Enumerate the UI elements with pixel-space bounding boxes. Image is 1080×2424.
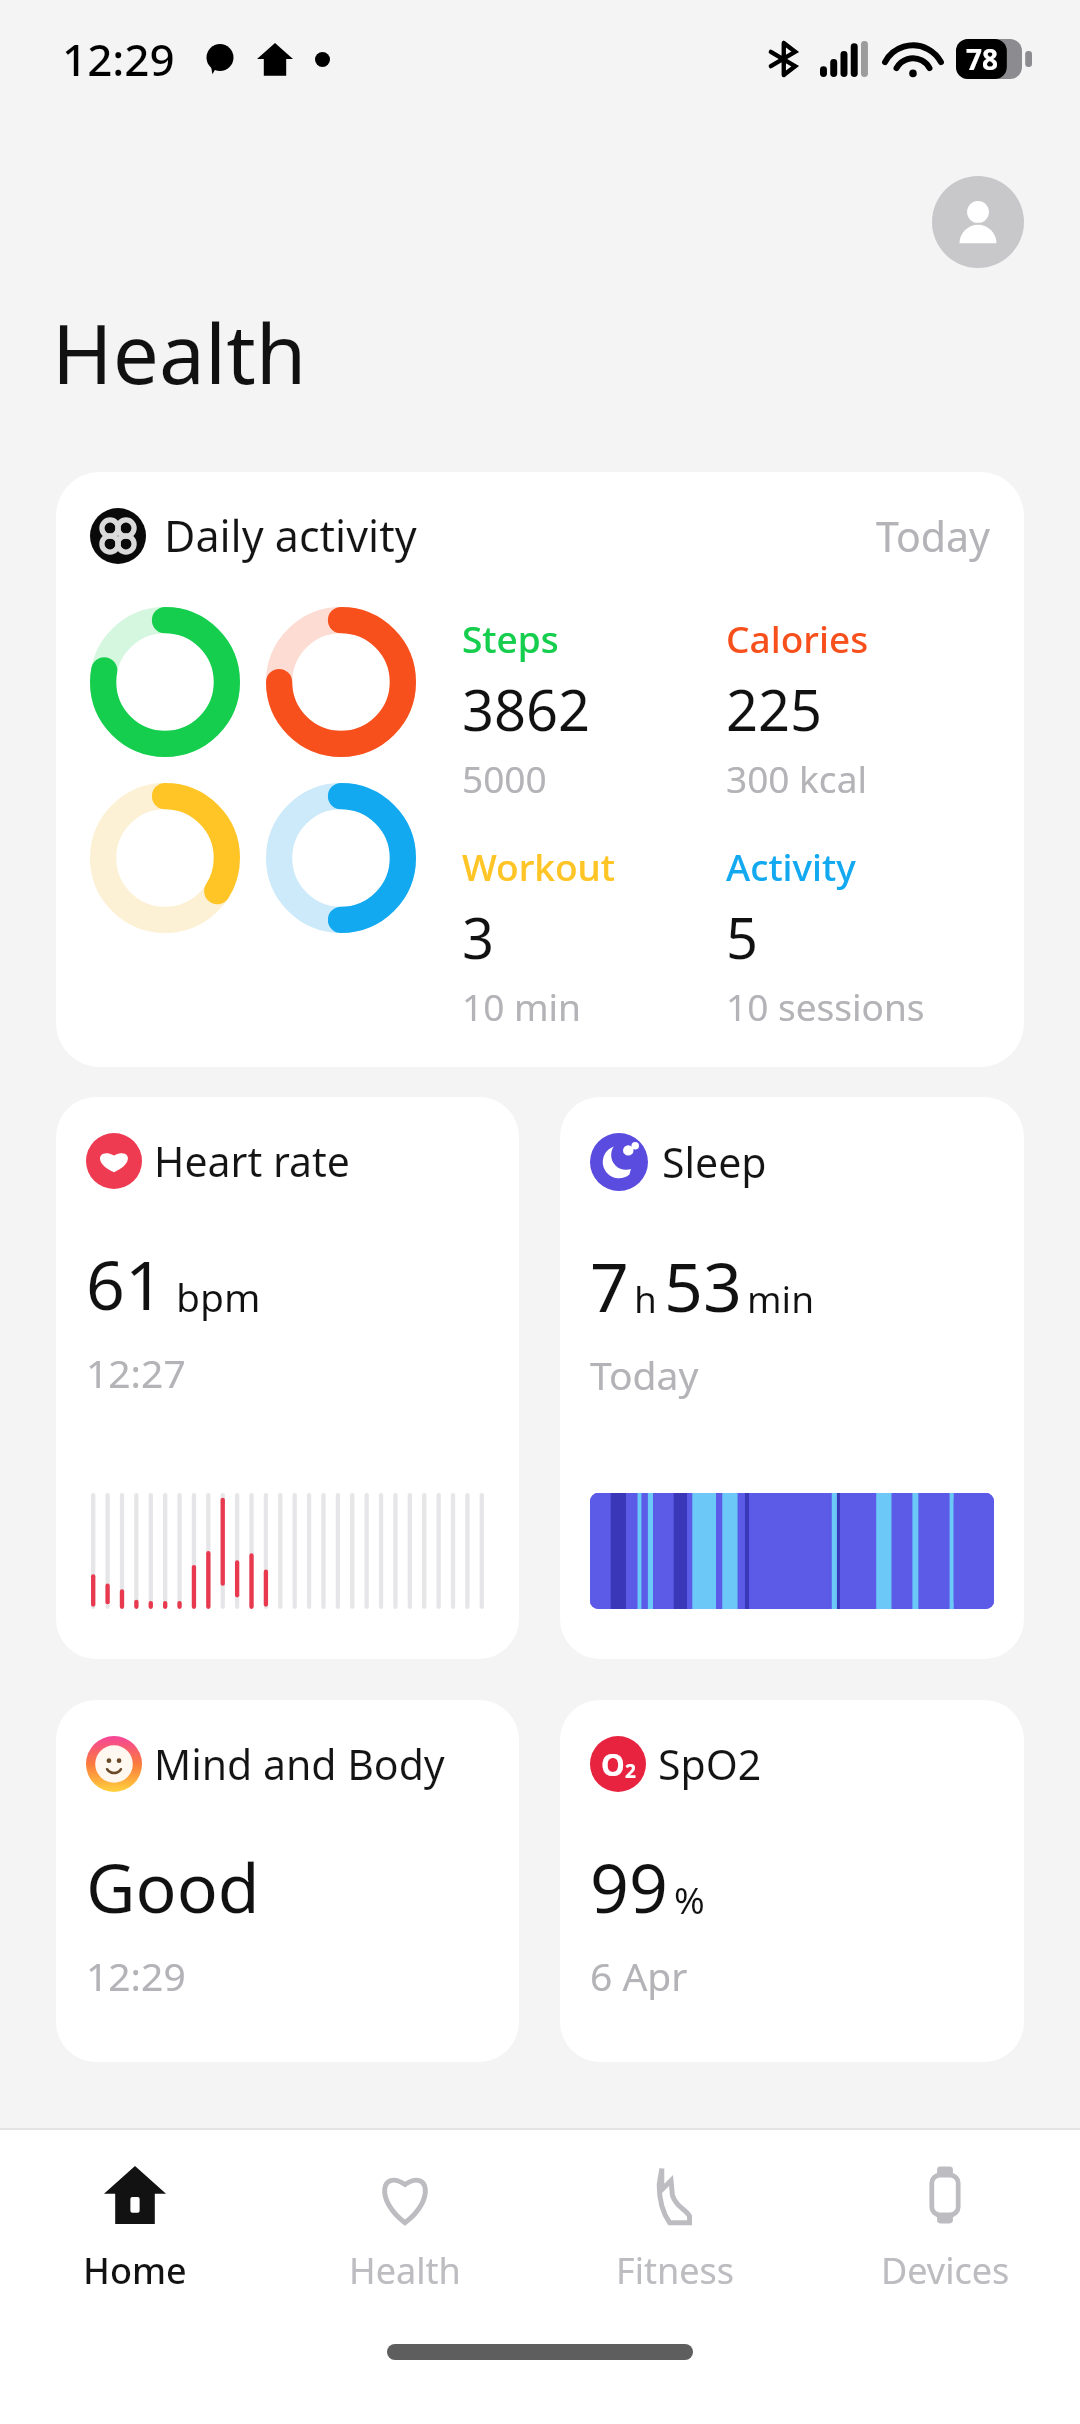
staticText: bpm <box>176 1270 261 1323</box>
staticText: Home <box>83 2246 187 2295</box>
button[interactable]: Profile <box>932 176 1024 268</box>
staticText: h <box>634 1273 657 1323</box>
staticText: 12:27 <box>86 1346 186 1399</box>
staticText: Today <box>590 1348 699 1401</box>
staticText: 7 <box>590 1239 629 1332</box>
staticText: 10 min <box>462 981 581 1031</box>
staticText: % <box>674 1874 705 1924</box>
staticText: Steps <box>462 613 559 663</box>
staticText: Sleep <box>662 1134 767 1190</box>
staticText: 78 <box>966 40 999 78</box>
staticText: Mind and Body <box>154 1736 445 1792</box>
staticText: 99 <box>590 1840 668 1933</box>
staticText: 53 <box>664 1239 742 1332</box>
staticText: Workout <box>462 841 615 891</box>
button[interactable]: Daily activity <box>56 472 1024 1067</box>
staticText: Heart rate <box>154 1133 350 1189</box>
staticText: min <box>747 1273 815 1323</box>
staticText: Today <box>876 508 990 564</box>
staticText: 61 <box>86 1237 164 1330</box>
staticText: 3862 <box>462 671 591 747</box>
staticText: 2 <box>625 1758 636 1784</box>
button[interactable]: Home <box>0 2130 270 2330</box>
staticText: Health <box>52 296 307 408</box>
button[interactable]: Mind and Body <box>56 1700 519 2062</box>
staticText: 10 sessions <box>726 981 925 1031</box>
staticText: 5000 <box>462 753 547 803</box>
button[interactable]: O <box>560 1700 1024 2062</box>
staticText: SpO2 <box>658 1736 762 1792</box>
staticText: 6 Apr <box>590 1949 688 2002</box>
staticText: 3 <box>462 899 495 975</box>
staticText: Health <box>349 2246 461 2295</box>
staticText: Devices <box>881 2246 1010 2295</box>
button[interactable]: Heart rate <box>56 1097 519 1659</box>
staticText: Daily activity <box>164 506 417 565</box>
staticText: 12:29 <box>62 29 175 89</box>
button[interactable]: Health <box>270 2130 540 2330</box>
button[interactable]: Fitness <box>540 2130 810 2330</box>
staticText: Fitness <box>616 2246 735 2295</box>
button[interactable]: Devices <box>810 2130 1080 2330</box>
staticText: 12:29 <box>86 1949 186 2002</box>
staticText: Calories <box>726 613 869 663</box>
staticText: Good <box>86 1840 260 1933</box>
staticText: O <box>601 1744 625 1785</box>
staticText: 225 <box>726 671 823 747</box>
staticText: Activity <box>726 841 856 891</box>
button[interactable]: Sleep <box>560 1097 1024 1659</box>
staticText: 300 kcal <box>726 753 867 803</box>
staticText: 5 <box>726 899 759 975</box>
